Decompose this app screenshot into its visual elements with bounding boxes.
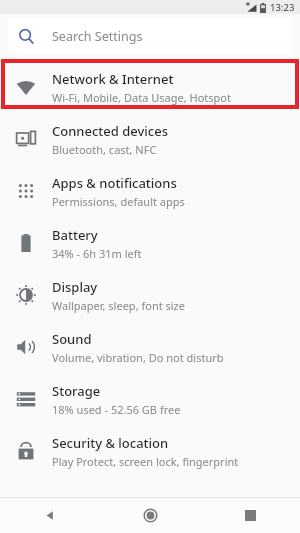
other: Search bbox=[18, 28, 35, 45]
button[interactable]: Sound bbox=[0, 321, 300, 373]
staticText: Battery bbox=[52, 226, 98, 244]
button[interactable]: Battery bbox=[0, 217, 300, 269]
button[interactable]: Back bbox=[0, 498, 100, 533]
staticText: 13:23 bbox=[270, 1, 295, 14]
staticText: Wi-Fi, Mobile, Data Usage, Hotspot bbox=[52, 90, 231, 105]
button[interactable]: Display bbox=[0, 269, 300, 321]
staticText: Storage bbox=[52, 382, 101, 400]
staticText: Volume, vibration, Do not disturb bbox=[52, 350, 224, 365]
staticText: 34% - 6h 31m left bbox=[52, 246, 142, 261]
staticText: Permissions, default apps bbox=[52, 194, 185, 209]
button[interactable]: Storage bbox=[0, 373, 300, 425]
staticText: Apps & notifications bbox=[52, 174, 177, 192]
staticText: Search Settings bbox=[52, 28, 143, 45]
button[interactable]: Recent apps bbox=[200, 498, 300, 533]
button[interactable]: Search bbox=[8, 18, 292, 54]
staticText: Display bbox=[52, 278, 98, 296]
staticText: Sound bbox=[52, 330, 92, 348]
staticText: 18% used - 52.56 GB free bbox=[52, 402, 181, 417]
staticText: Wallpaper, sleep, font size bbox=[52, 298, 185, 313]
button[interactable]: Home bbox=[100, 498, 200, 533]
staticText: Network & Internet bbox=[52, 70, 174, 88]
button[interactable]: Connected devices bbox=[0, 113, 300, 165]
staticText: Play Protect, screen lock, fingerprint bbox=[52, 454, 239, 469]
staticText: Bluetooth, cast, NFC bbox=[52, 142, 157, 157]
staticText: Security & location bbox=[52, 434, 169, 452]
button[interactable]: Security & location bbox=[0, 425, 300, 477]
button[interactable]: Apps & notifications bbox=[0, 165, 300, 217]
staticText: Connected devices bbox=[52, 122, 169, 140]
button[interactable]: Network & Internet bbox=[0, 61, 300, 113]
